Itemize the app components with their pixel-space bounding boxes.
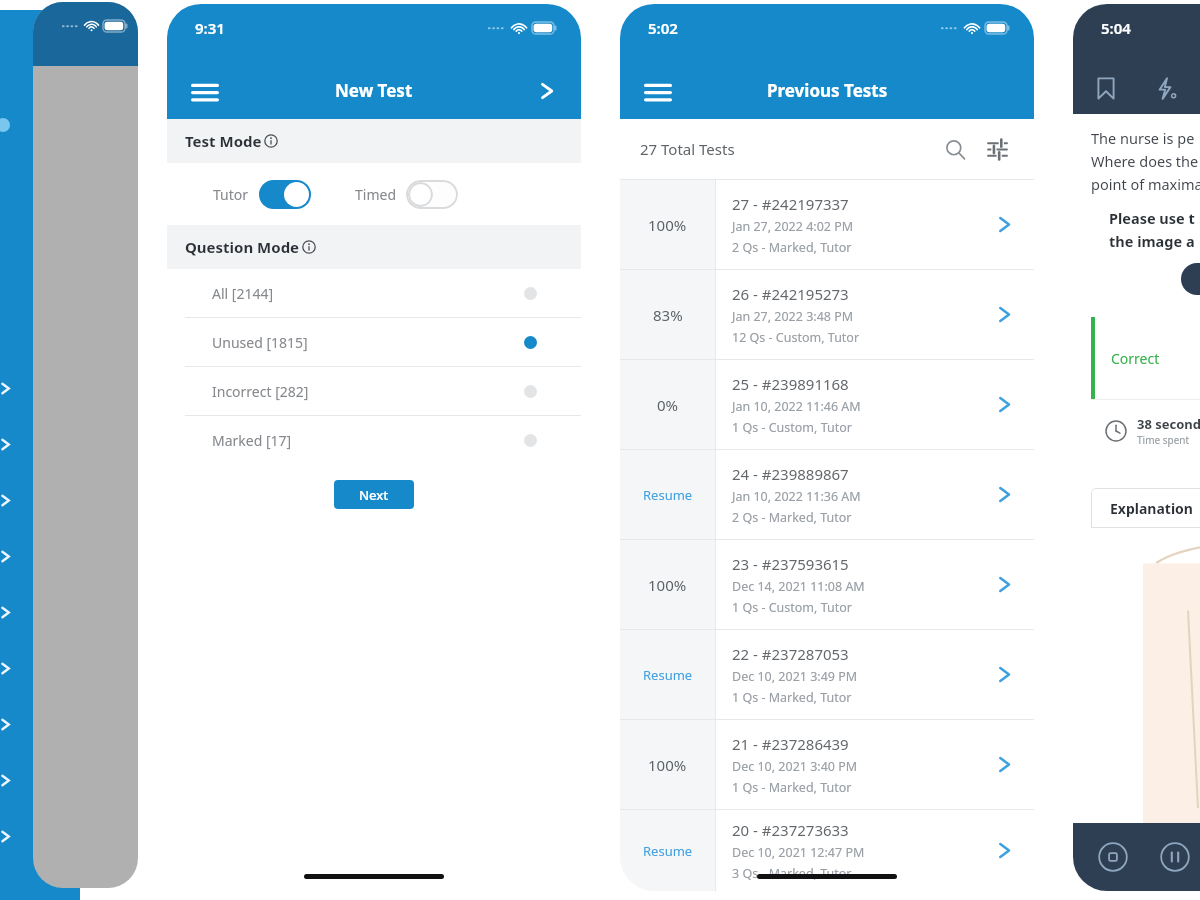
staticText: Please use t <box>1109 208 1195 228</box>
button[interactable]: Bookmark <box>1089 71 1123 105</box>
staticText: 12 Qs - Custom, Tutor <box>732 329 860 346</box>
staticText: 26 - #242195273 <box>732 284 849 304</box>
staticText: 27 - #242197337 <box>732 194 849 214</box>
button[interactable]: Explanation <box>1091 488 1200 528</box>
button[interactable]: Tutor <box>213 180 311 209</box>
button[interactable]: 100% <box>620 540 1034 629</box>
staticText: 100% <box>648 575 687 595</box>
staticText: 2 Qs - Marked, Tutor <box>732 239 852 256</box>
button[interactable]: Off <box>406 180 458 209</box>
button[interactable]: Filter <box>980 132 1014 166</box>
staticText: 1 Qs - Custom, Tutor <box>732 599 852 616</box>
staticText: Dec 10, 2021 3:40 PM <box>732 758 858 775</box>
staticText: Jan 27, 2022 3:48 PM <box>732 308 854 325</box>
button[interactable]: Unused [1815] <box>167 318 581 366</box>
staticText: Explanation <box>1110 499 1193 518</box>
staticText: 1 Qs - Marked, Tutor <box>732 689 852 706</box>
button[interactable]: Marked [17] <box>167 416 581 464</box>
staticText: 25 - #239891168 <box>732 374 849 394</box>
staticText: point of maxima <box>1091 174 1200 194</box>
button[interactable]: Timed <box>355 180 458 209</box>
staticText: New Test <box>335 79 413 102</box>
button[interactable]: Pause <box>1157 839 1193 875</box>
staticText: Marked [17] <box>212 431 292 450</box>
button[interactable]: All [2144] <box>167 269 581 317</box>
staticText: 20 - #237273633 <box>732 820 849 840</box>
button[interactable]: Incorrect [282] <box>167 367 581 415</box>
staticText: Next <box>359 486 389 504</box>
staticText: Resume <box>643 486 693 504</box>
button[interactable]: Menu <box>636 69 680 113</box>
staticText: 23 - #237593615 <box>732 554 849 574</box>
staticText: 38 seconds <box>1137 415 1200 433</box>
button[interactable]: Stop <box>1095 839 1131 875</box>
staticText: The nurse is pe <box>1091 128 1195 148</box>
staticText: Timed <box>355 185 396 204</box>
button[interactable] <box>1181 263 1200 295</box>
button[interactable]: Next <box>527 71 567 111</box>
button[interactable]: Highlight <box>1149 71 1183 105</box>
staticText: 22 - #237287053 <box>732 644 849 664</box>
staticText: Dec 10, 2021 3:49 PM <box>732 668 858 685</box>
button[interactable]: On <box>259 180 311 209</box>
button[interactable]: Resume <box>620 630 1034 719</box>
staticText: 27 Total Tests <box>640 139 735 159</box>
button[interactable]: Search <box>938 132 972 166</box>
staticText: 9:31 <box>195 18 225 38</box>
staticText: Dec 10, 2021 12:47 PM <box>732 844 865 861</box>
staticText: 0% <box>657 395 679 415</box>
button[interactable]: 100% <box>620 180 1034 269</box>
staticText: Incorrect [282] <box>212 382 309 401</box>
staticText: Question Mode <box>185 237 300 257</box>
staticText: Tutor <box>213 185 249 204</box>
button[interactable]: Resume <box>620 450 1034 539</box>
staticText: Unused [1815] <box>212 333 308 352</box>
button[interactable]: 0% <box>620 360 1034 449</box>
staticText: 100% <box>648 215 687 235</box>
staticText: 100% <box>648 755 687 775</box>
staticText: Where does the <box>1091 151 1199 171</box>
staticText: Time spent <box>1137 433 1190 447</box>
staticText: Jan 10, 2022 11:46 AM <box>732 398 861 415</box>
staticText: Test Mode <box>185 131 262 151</box>
staticText: 1 Qs - Marked, Tutor <box>732 779 852 796</box>
staticText: 3 Qs - Marked, Tutor <box>732 865 852 882</box>
button[interactable]: 100% <box>620 720 1034 809</box>
staticText: 83% <box>653 305 683 325</box>
staticText: Previous Tests <box>767 79 888 102</box>
staticText: Correct <box>1111 349 1160 368</box>
button[interactable]: Resume <box>620 810 1034 891</box>
staticText: Jan 10, 2022 11:36 AM <box>732 488 861 505</box>
staticText: Dec 14, 2021 11:08 AM <box>732 578 865 595</box>
staticText: 1 Qs - Custom, Tutor <box>732 419 852 436</box>
staticText: 2 Qs - Marked, Tutor <box>732 509 852 526</box>
staticText: 5:04 <box>1101 18 1131 38</box>
staticText: 21 - #237286439 <box>732 734 849 754</box>
staticText: All [2144] <box>212 284 274 303</box>
button[interactable]: 83% <box>620 270 1034 359</box>
staticText: Jan 27, 2022 4:02 PM <box>732 218 854 235</box>
staticText: Resume <box>643 666 693 684</box>
staticText: 24 - #239889867 <box>732 464 849 484</box>
staticText: Resume <box>643 842 693 860</box>
button[interactable]: Menu <box>183 69 227 113</box>
staticText: the image a <box>1109 231 1195 251</box>
staticText: 5:02 <box>648 18 678 38</box>
button[interactable]: Next <box>334 480 414 509</box>
